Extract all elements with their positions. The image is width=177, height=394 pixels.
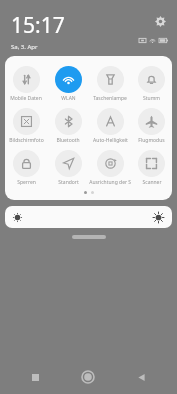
staticText: Stumm — [143, 95, 160, 102]
staticText: Sperren — [17, 179, 36, 186]
button[interactable]: Scanner — [131, 147, 172, 189]
staticText: 15:17 — [11, 11, 65, 40]
staticText: Standort — [58, 179, 79, 186]
staticText: WLAN — [61, 95, 76, 102]
button[interactable]: Settings — [153, 14, 167, 28]
button[interactable]: Back — [126, 362, 156, 392]
staticText: Bluetooth — [56, 137, 80, 144]
staticText: Flugmodus — [138, 137, 165, 144]
button[interactable]: Auto-Helligkeit — [89, 105, 131, 147]
button[interactable]: Expand panel — [72, 235, 106, 239]
staticText: Taschenlampe — [93, 95, 127, 102]
button[interactable]: Ausrichtung der Sperre — [89, 147, 131, 189]
staticText: Auto-Helligkeit — [93, 137, 128, 144]
button[interactable]: Brightness — [5, 206, 172, 228]
staticText: Ausrichtung der Sperre — [89, 179, 131, 186]
button[interactable]: Stumm — [131, 63, 172, 105]
button[interactable]: WLAN — [47, 63, 89, 105]
button[interactable]: Recents — [20, 362, 50, 392]
button[interactable]: Flugmodus — [131, 105, 172, 147]
button[interactable]: Taschenlampe — [89, 63, 131, 105]
staticText: Bildschirmfoto — [9, 137, 44, 144]
button[interactable]: Bildschirmfoto — [5, 105, 47, 147]
button[interactable]: Bluetooth — [47, 105, 89, 147]
button[interactable]: Mobile Daten — [5, 63, 47, 105]
button[interactable]: Sperren — [5, 147, 47, 189]
staticText: Scanner — [142, 179, 162, 186]
button[interactable]: Home — [73, 362, 103, 392]
button[interactable]: Standort — [47, 147, 89, 189]
staticText: Mobile Daten — [10, 95, 42, 102]
staticText: Sa, 3. Apr — [11, 43, 38, 51]
